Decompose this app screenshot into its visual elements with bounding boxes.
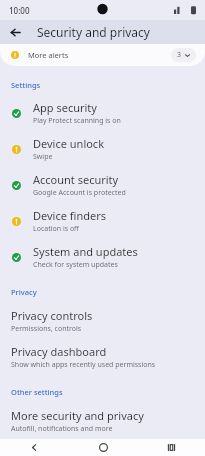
staticText: Play Protect scanning is on [33,116,121,126]
staticText: Google Account is protected [33,188,126,198]
staticText: App security [33,100,97,115]
staticText: Account security [33,172,119,187]
button[interactable]: System and updates [0,239,205,275]
staticText: 10:00 [9,5,30,16]
button[interactable]: Privacy controls [0,303,205,339]
staticText: Location is off [33,224,79,234]
staticText: Privacy dashboard [11,344,107,359]
staticText: Other settings [11,387,63,397]
staticText: Check for system updates [33,260,118,270]
button[interactable]: Recent apps [137,439,205,456]
staticText: Swipe [33,152,53,162]
staticText: Device unlock [33,136,105,151]
staticText: More alerts [28,50,69,60]
staticText: Autofill, notifications and more [11,424,113,434]
staticText: 3 [177,50,182,60]
staticText: More security and privacy [11,408,144,423]
button[interactable]: More alerts [0,44,205,66]
staticText: Privacy controls [11,308,93,323]
button[interactable]: Account security [0,167,205,203]
staticText: Device finders [33,208,106,223]
staticText: Permissions, controls [11,324,82,334]
button[interactable]: Device unlock [0,131,205,167]
button[interactable]: Home [69,439,137,456]
staticText: Privacy [11,287,37,297]
button[interactable]: Back [0,439,69,456]
staticText: Settings [11,80,41,90]
button[interactable]: Device finders [0,203,205,239]
button[interactable]: App security [0,95,205,131]
button[interactable]: Privacy dashboard [0,339,205,375]
staticText: Show which apps recently used permission… [11,360,156,370]
button[interactable]: Back [0,20,30,44]
button[interactable]: 3 [177,50,190,60]
button[interactable]: More security and privacy [0,403,205,439]
staticText: System and updates [33,244,138,259]
staticText: Security and privacy [37,24,150,40]
